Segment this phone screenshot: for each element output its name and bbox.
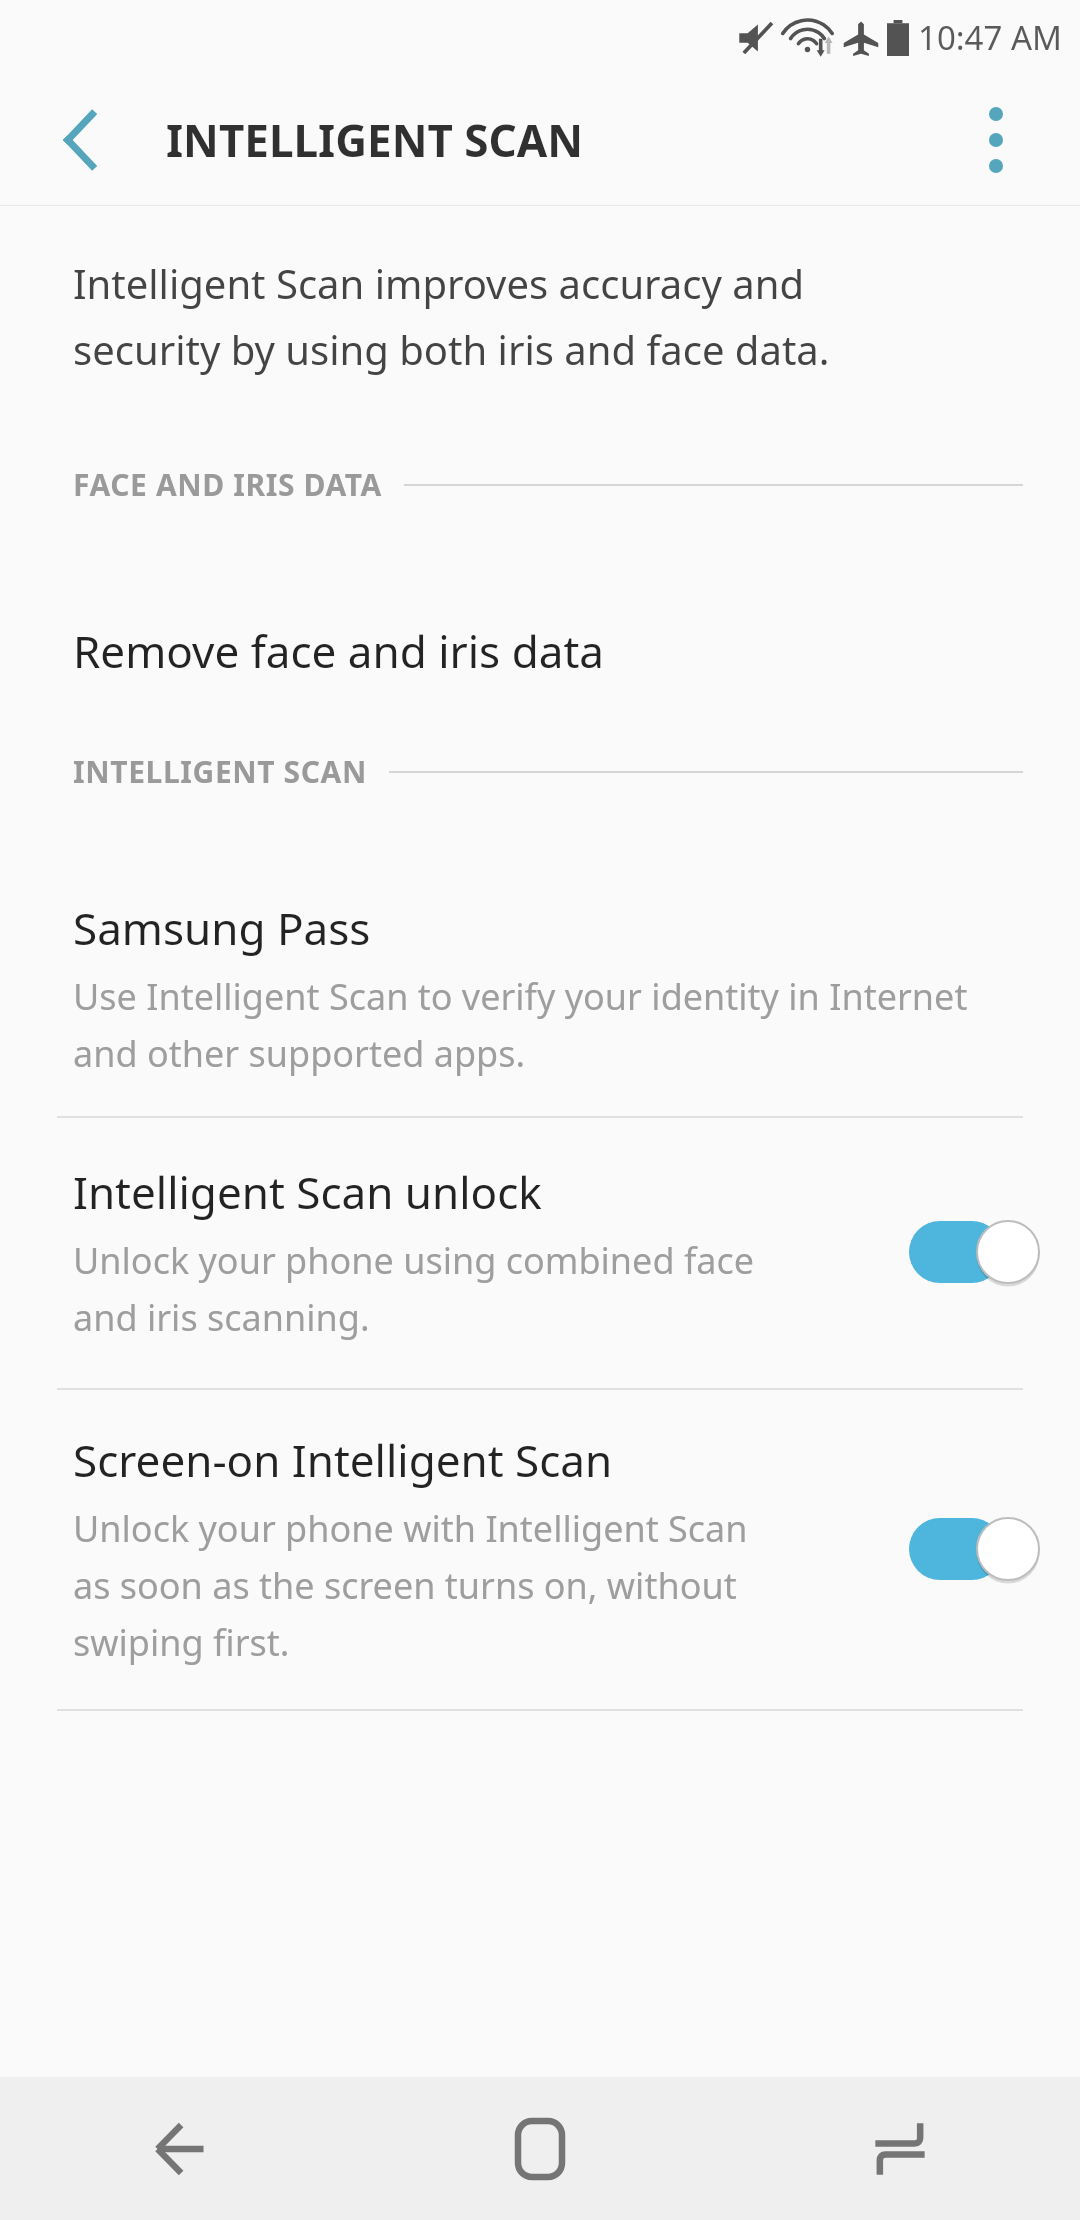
- staticText: 10:47 AM: [918, 15, 1062, 60]
- staticText: security by using both iris and face dat…: [73, 322, 830, 376]
- button[interactable]: Toggle: [908, 1510, 1040, 1588]
- staticText: INTELLIGENT SCAN: [166, 110, 584, 170]
- staticText: Intelligent Scan unlock: [73, 1162, 542, 1222]
- button[interactable]: Screen-on Intelligent Scan: [0, 1390, 1080, 1709]
- button[interactable]: Back: [28, 88, 132, 192]
- button[interactable]: Recent apps: [720, 2077, 1080, 2220]
- button[interactable]: Remove face and iris data: [0, 603, 1080, 699]
- staticText: Unlock your phone using combined face: [73, 1236, 755, 1285]
- staticText: Use Intelligent Scan to verify your iden…: [73, 972, 968, 1021]
- staticText: INTELLIGENT SCAN: [73, 751, 367, 792]
- staticText: FACE AND IRIS DATA: [73, 464, 382, 505]
- staticText: and iris scanning.: [73, 1293, 370, 1342]
- button[interactable]: Intelligent Scan unlock: [0, 1118, 1080, 1388]
- button[interactable]: Samsung Pass: [0, 864, 1080, 1116]
- staticText: Intelligent Scan improves accuracy and: [73, 256, 805, 310]
- button[interactable]: Home: [360, 2077, 720, 2220]
- staticText: as soon as the screen turns on, without: [73, 1561, 737, 1610]
- staticText: Remove face and iris data: [73, 621, 604, 681]
- staticText: Screen-on Intelligent Scan: [73, 1430, 613, 1490]
- button[interactable]: Back: [0, 2077, 360, 2220]
- staticText: Unlock your phone with Intelligent Scan: [73, 1504, 748, 1553]
- button[interactable]: Toggle: [908, 1213, 1040, 1291]
- staticText: and other supported apps.: [73, 1029, 526, 1078]
- staticText: swiping first.: [73, 1618, 290, 1667]
- button[interactable]: More options: [944, 88, 1048, 192]
- staticText: Samsung Pass: [73, 898, 371, 958]
